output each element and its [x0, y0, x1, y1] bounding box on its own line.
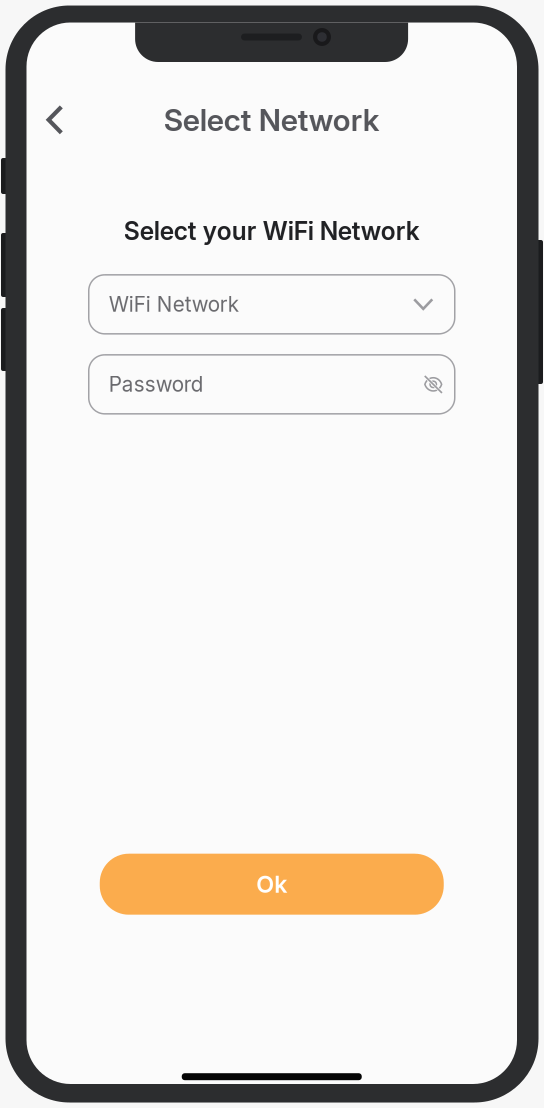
- button[interactable]: Ok: [100, 854, 444, 915]
- staticText: Select your WiFi Network: [124, 216, 420, 246]
- staticText: WiFi Network: [109, 292, 239, 317]
- button[interactable]: Password: [89, 355, 455, 414]
- staticText: Select Network: [164, 102, 380, 138]
- button[interactable]: WiFi Network: [89, 275, 455, 334]
- staticText: Password: [109, 372, 204, 397]
- staticText: Ok: [256, 870, 287, 898]
- button[interactable]: Back: [32, 97, 78, 143]
